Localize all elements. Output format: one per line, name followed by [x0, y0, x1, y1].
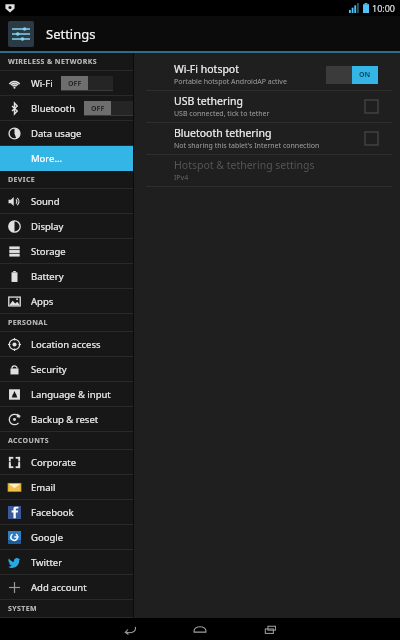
- staticText: ON: [359, 70, 371, 80]
- staticText: PERSONAL: [8, 318, 48, 328]
- staticText: WIRELESS & NETWORKS: [8, 57, 98, 67]
- staticText: Google: [31, 531, 64, 544]
- staticText: USB tethering: [174, 94, 243, 108]
- button[interactable]: Sound: [0, 189, 133, 213]
- button[interactable]: Apps: [0, 289, 133, 313]
- button[interactable]: Display: [0, 214, 133, 238]
- staticText: Display: [31, 220, 64, 233]
- staticText: OFF: [68, 79, 82, 89]
- button[interactable]: Facebook: [0, 500, 133, 524]
- button[interactable]: Location access: [0, 332, 133, 356]
- button[interactable]: Twitter: [0, 550, 133, 574]
- button[interactable]: Settings: [8, 21, 34, 47]
- staticText: More...: [31, 152, 63, 165]
- button[interactable]: Battery: [0, 264, 133, 288]
- staticText: Data usage: [31, 127, 82, 140]
- staticText: 10:00: [372, 2, 396, 14]
- staticText: OFF: [91, 104, 105, 114]
- button[interactable]: OFF: [61, 76, 113, 91]
- button[interactable]: Google: [0, 525, 133, 549]
- staticText: Apps: [31, 295, 54, 308]
- staticText: Portable hotspot AndroidAP active: [174, 77, 287, 87]
- button[interactable]: ON: [326, 66, 378, 84]
- staticText: Corporate: [31, 456, 77, 469]
- staticText: Battery: [31, 270, 64, 283]
- button[interactable]: Hotspot & tethering settings: [134, 155, 400, 186]
- staticText: ACCOUNTS: [8, 436, 50, 446]
- staticText: Sound: [31, 195, 60, 208]
- staticText: Security: [31, 363, 67, 376]
- staticText: Hotspot & tethering settings: [174, 158, 315, 172]
- button[interactable]: Recent apps: [235, 618, 305, 640]
- button[interactable]: Home: [165, 618, 235, 640]
- button[interactable]: Storage: [0, 239, 133, 263]
- staticText: DEVICE: [8, 175, 36, 185]
- button[interactable]: Bluetooth tethering: [134, 123, 400, 154]
- button[interactable]: More...: [0, 146, 133, 170]
- button[interactable]: Back: [95, 618, 165, 640]
- staticText: IPv4: [174, 173, 189, 183]
- staticText: Email: [31, 481, 56, 494]
- staticText: Language & input: [31, 388, 111, 401]
- staticText: SYSTEM: [8, 604, 38, 614]
- staticText: Wi-Fi: [31, 77, 53, 90]
- staticText: Storage: [31, 245, 66, 258]
- staticText: Add account: [31, 581, 87, 594]
- button[interactable]: OFF: [84, 101, 133, 116]
- staticText: Bluetooth tethering: [174, 126, 272, 140]
- button[interactable]: Backup & reset: [0, 407, 133, 431]
- staticText: Bluetooth: [31, 102, 76, 115]
- staticText: Twitter: [31, 556, 63, 569]
- staticText: Wi-Fi hotspot: [174, 62, 240, 76]
- staticText: Not sharing this tablet's Internet conne…: [174, 141, 320, 151]
- staticText: Backup & reset: [31, 413, 99, 426]
- button[interactable]: USB tethering: [134, 91, 400, 122]
- button[interactable]: Security: [0, 357, 133, 381]
- button[interactable]: Toggle: [365, 100, 378, 113]
- button[interactable]: Wi-Fi hotspot: [134, 59, 400, 90]
- button[interactable]: Toggle: [365, 132, 378, 145]
- button[interactable]: Wi-Fi: [0, 71, 133, 95]
- staticText: Facebook: [31, 506, 74, 519]
- staticText: USB connected, tick to tether: [174, 109, 270, 119]
- button[interactable]: Corporate: [0, 450, 133, 474]
- staticText: Settings: [46, 25, 96, 43]
- button[interactable]: Language & input: [0, 382, 133, 406]
- button[interactable]: Bluetooth: [0, 96, 133, 120]
- button[interactable]: Email: [0, 475, 133, 499]
- button[interactable]: Data usage: [0, 121, 133, 145]
- button[interactable]: Add account: [0, 575, 133, 599]
- staticText: Location access: [31, 338, 101, 351]
